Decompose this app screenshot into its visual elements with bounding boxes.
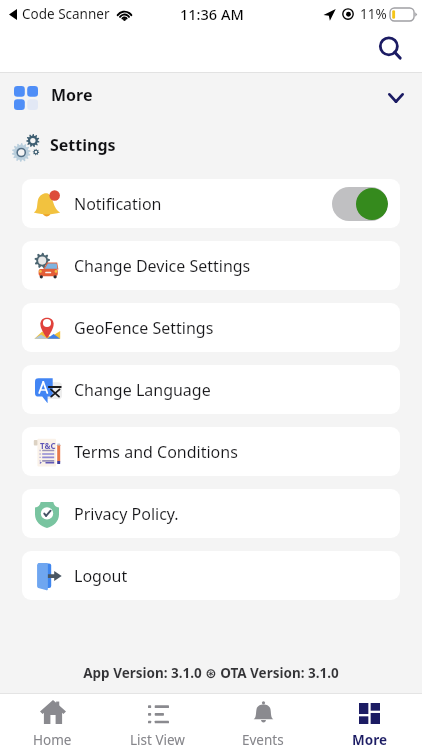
button[interactable]: GeoFence Settings <box>22 303 400 352</box>
button[interactable]: Home <box>0 694 105 750</box>
button[interactable]: Notification toggle <box>332 187 388 221</box>
staticText: Change Language <box>74 379 211 401</box>
staticText: Notification <box>74 193 162 215</box>
staticText: 11:36 AM <box>180 4 244 24</box>
button[interactable]: More <box>316 694 422 750</box>
button[interactable]: T&C <box>22 427 400 476</box>
button[interactable]: Logout <box>22 551 400 600</box>
button[interactable]: More <box>0 73 422 123</box>
staticText: Privacy Policy. <box>74 503 179 525</box>
staticText: More <box>51 84 93 106</box>
staticText: 11% <box>360 5 387 23</box>
staticText: More <box>352 731 387 749</box>
staticText: Code Scanner <box>22 5 110 23</box>
button[interactable]: Change Language <box>22 365 400 414</box>
button[interactable]: Change Device Settings <box>22 241 400 290</box>
staticText: Settings <box>50 134 116 156</box>
staticText: Home <box>33 731 72 749</box>
staticText: Events <box>242 731 284 749</box>
staticText: Terms and Conditions <box>74 441 238 463</box>
staticText: List View <box>130 731 185 749</box>
staticText: Logout <box>74 565 128 587</box>
button[interactable]: Notification <box>22 179 400 228</box>
button[interactable]: Privacy Policy. <box>22 489 400 538</box>
staticText: T&C <box>40 440 56 451</box>
staticText: App Version: 3.1.0 ⊛ OTA Version: 3.1.0 <box>0 664 422 682</box>
staticText: Change Device Settings <box>74 255 251 277</box>
staticText: GeoFence Settings <box>74 317 214 339</box>
button[interactable]: Search <box>373 31 409 67</box>
button[interactable]: List View <box>105 694 210 750</box>
button[interactable]: Events <box>210 694 316 750</box>
